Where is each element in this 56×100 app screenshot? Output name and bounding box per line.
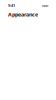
staticText: Appearance xyxy=(8,11,38,18)
staticText: 9:41 xyxy=(8,3,15,8)
staticText: ooo xyxy=(42,3,48,8)
